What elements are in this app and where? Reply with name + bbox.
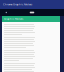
- button[interactable]: Address bar: [0, 9, 64, 16]
- staticText: Graphic Folders: [4, 18, 23, 20]
- staticText: Chrome Graphic Folders: [3, 3, 32, 6]
- button[interactable]: Chrome Graphic Folders: [0, 0, 64, 9]
